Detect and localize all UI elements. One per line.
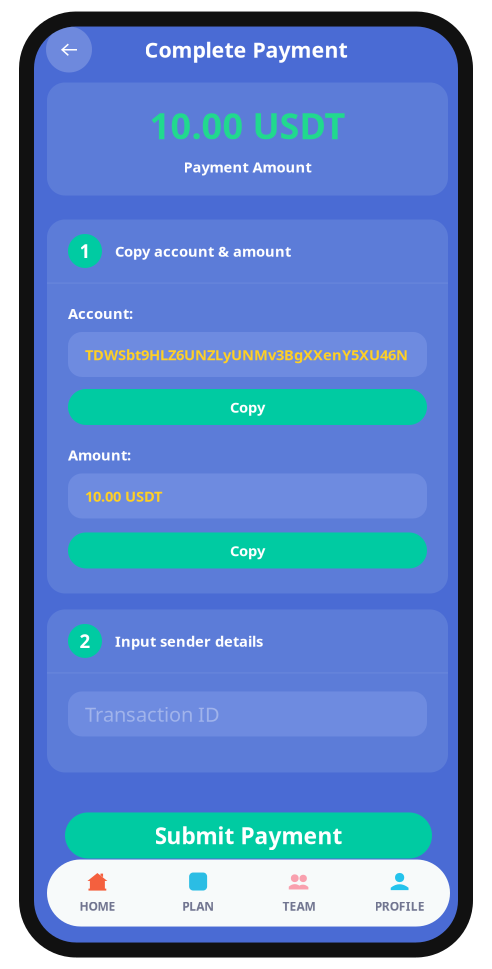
button[interactable]: Submit Payment [34,812,458,858]
staticText: Complete Payment [144,35,347,64]
staticText: TDWSbt9HLZ6UNZLyUNMv3BgXXenY5XU46N [85,345,408,364]
staticText: Account: [68,303,133,323]
staticText: 10.00 USDT [149,101,345,149]
staticText: 10.00 USDT [85,486,162,506]
button[interactable]: Back [46,26,92,72]
staticText: Copy [230,541,265,560]
staticText: Copy account & amount [115,241,291,261]
staticText: PLAN [182,898,214,914]
staticText: Submit Payment [154,820,342,850]
staticText: Payment Amount [183,157,311,177]
staticText: Input sender details [115,631,263,651]
button[interactable]: Copy [68,389,427,425]
staticText: HOME [79,898,115,914]
button[interactable]: TEAM [248,861,349,924]
staticText: 2 [79,629,90,653]
staticText: Transaction ID [85,701,220,727]
staticText: PROFILE [375,898,425,914]
button[interactable]: PROFILE [349,861,450,924]
staticText: Amount: [68,445,131,464]
button[interactable]: Copy [68,532,427,568]
staticText: Copy [230,397,265,417]
staticText: 1 [79,239,90,263]
staticText: TEAM [282,898,315,914]
button[interactable]: HOME [47,861,148,924]
button[interactable]: PLAN [148,861,249,924]
